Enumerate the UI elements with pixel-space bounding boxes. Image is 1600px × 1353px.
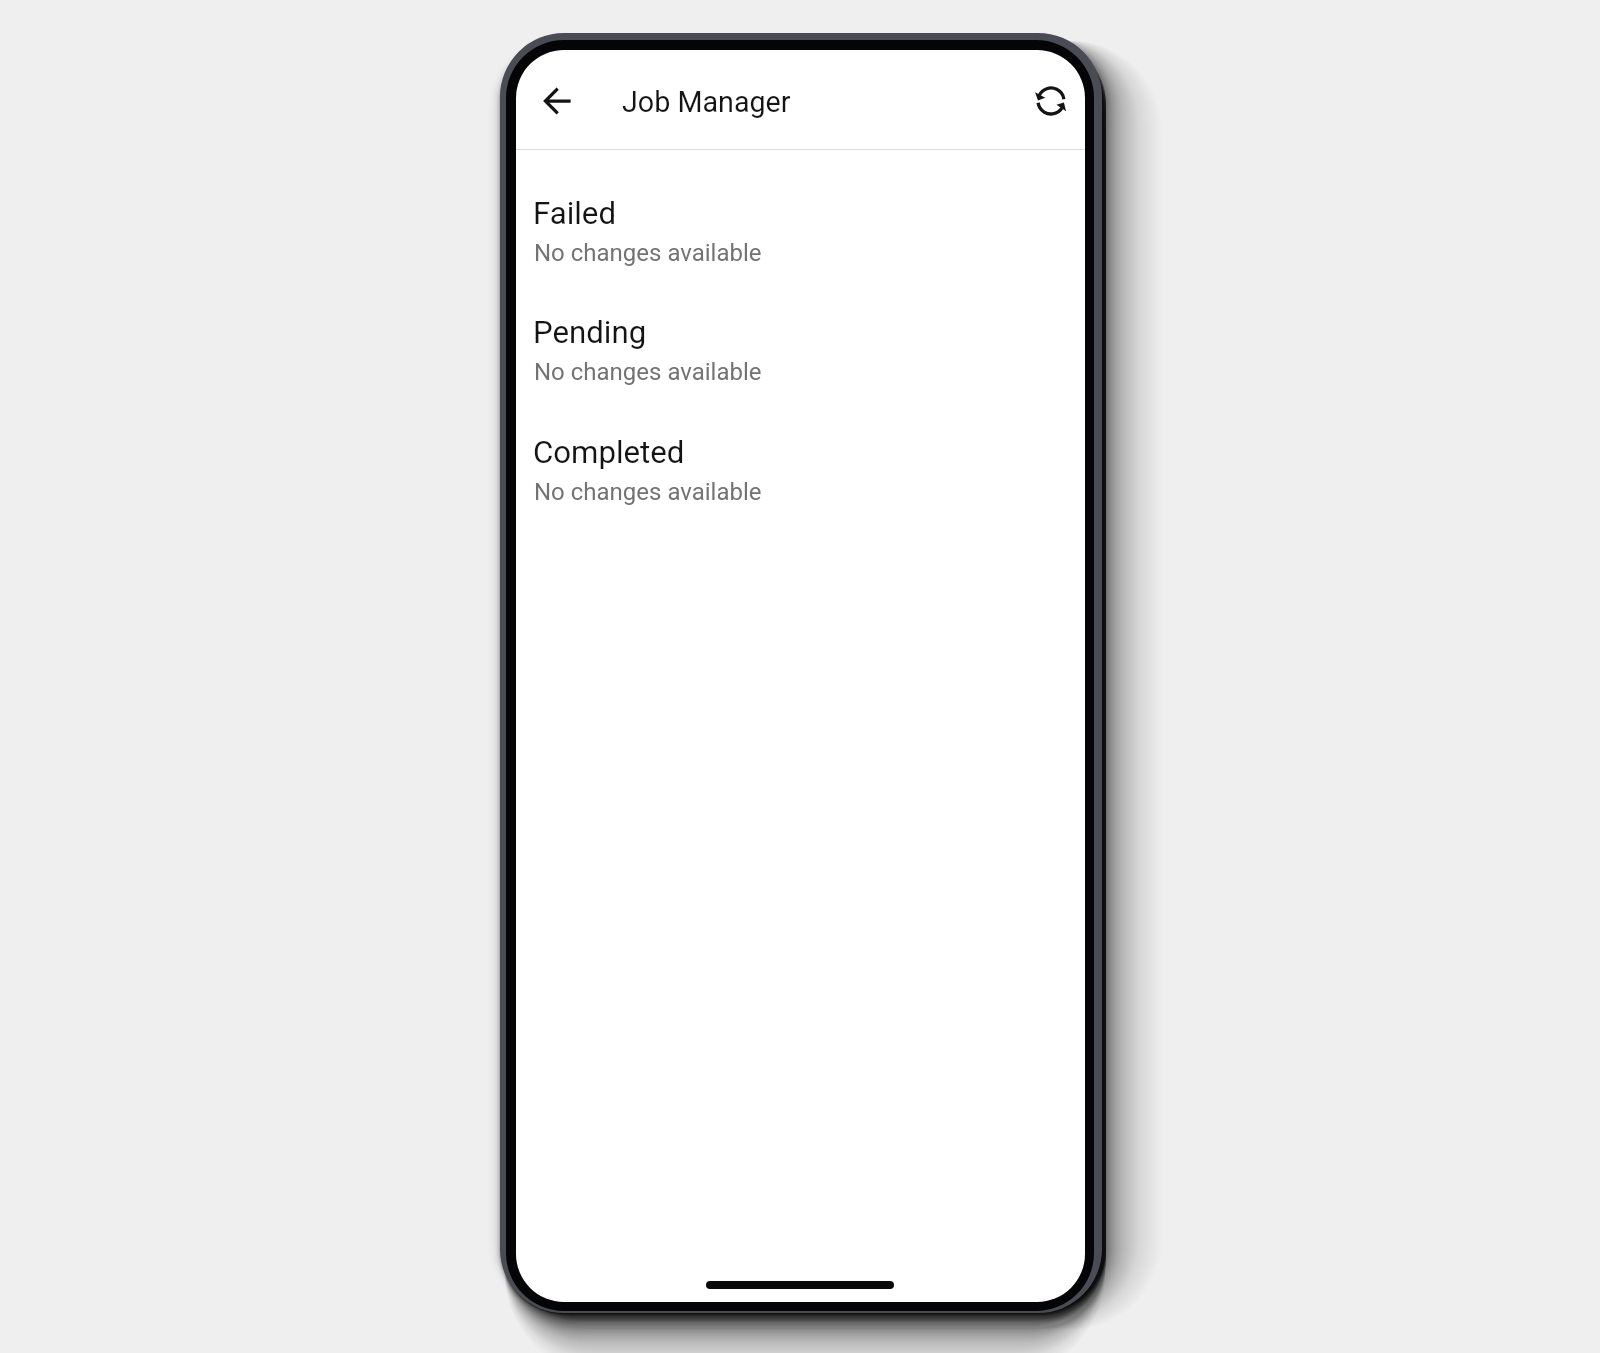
button[interactable]: Refresh bbox=[1020, 70, 1081, 131]
staticText: Pending bbox=[533, 314, 647, 351]
staticText: Completed bbox=[533, 434, 685, 471]
staticText: Job Manager bbox=[622, 85, 791, 119]
button[interactable]: Navigate up bbox=[527, 70, 588, 131]
button[interactable]: Completed bbox=[516, 434, 1085, 514]
staticText: Failed bbox=[533, 195, 616, 232]
staticText: No changes available bbox=[534, 358, 762, 386]
staticText: No changes available bbox=[534, 478, 762, 506]
button[interactable]: Pending bbox=[516, 314, 1085, 394]
staticText: No changes available bbox=[534, 239, 762, 267]
button[interactable]: Failed bbox=[516, 195, 1085, 275]
